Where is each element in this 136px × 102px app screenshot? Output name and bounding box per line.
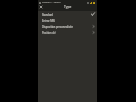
staticText: Standard [42, 13, 53, 16]
button[interactable]: Close [38, 4, 44, 10]
button[interactable]: Entrez MW [38, 17, 97, 23]
staticText: Disposition personnalisée [42, 25, 73, 28]
staticText: Position clé [42, 31, 56, 34]
staticText: Type [64, 5, 72, 9]
button[interactable]: Disposition personnalisée [38, 23, 97, 29]
button[interactable]: Standard [38, 11, 97, 17]
staticText: Orange F - Appels [42, 1, 61, 4]
button[interactable]: Position clé [38, 29, 97, 35]
staticText: Entrez MW [42, 19, 55, 22]
